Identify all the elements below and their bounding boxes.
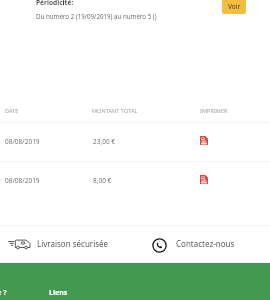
staticText: MONTANT TOTAL [92,107,197,114]
button[interactable]: Livraison sécurisée [8,224,109,262]
button[interactable]: Contactez-nous [152,224,235,262]
button[interactable]: Imprimer PDF [195,131,213,149]
button[interactable]: Liens [49,288,68,298]
staticText: Voir [228,2,241,11]
staticText: 08/08/2019 [5,176,88,185]
button[interactable]: Voir [222,0,246,14]
button[interactable]: Imprimer PDF [195,170,213,188]
button[interactable]: 08/08/2019 [0,122,270,160]
staticText: 8,00 € [93,176,193,185]
staticText: Du numéro 2 (19/09/2019) au numéro 5 () [36,12,157,20]
button[interactable]: Aide ? [0,288,7,298]
staticText: 08/08/2019 [5,137,88,146]
staticText: 23,00 € [93,137,193,146]
button[interactable]: 08/08/2019 [0,161,270,199]
staticText: Périodicité: [36,0,74,7]
staticText: IMPRIMER [200,107,228,114]
staticText: Contactez-nous [176,238,235,249]
staticText: Livraison sécurisée [37,238,109,249]
staticText: DATE [5,107,92,114]
